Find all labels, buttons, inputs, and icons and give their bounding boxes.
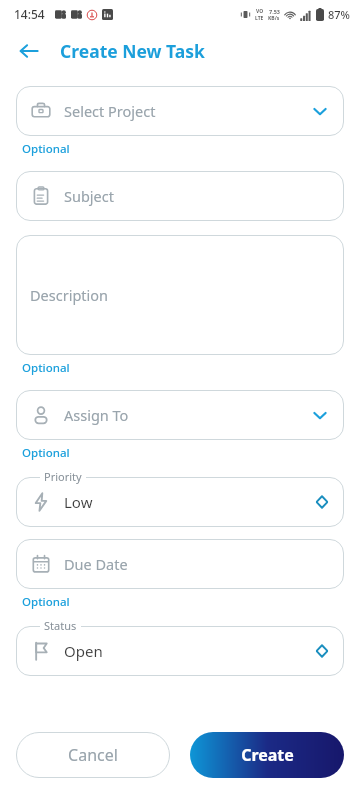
staticText: LTE <box>255 15 264 22</box>
staticText: Optional <box>22 360 70 376</box>
button[interactable]: Due Date <box>16 539 344 589</box>
staticText: Due Date <box>64 554 330 574</box>
staticText: Select Project <box>64 101 310 121</box>
staticText: Status <box>44 618 77 633</box>
staticText: Create New Task <box>60 39 205 63</box>
button[interactable]: Back <box>12 34 46 68</box>
staticText: Description <box>30 285 109 305</box>
button[interactable]: Low <box>16 477 344 527</box>
button[interactable]: Assign To <box>16 390 344 440</box>
staticText: Optional <box>22 141 70 157</box>
staticText: VO <box>256 8 264 15</box>
button[interactable]: Description <box>16 235 344 355</box>
staticText: Low <box>64 492 314 512</box>
staticText: 14:54 <box>14 6 45 22</box>
button[interactable]: Cancel <box>16 732 170 778</box>
staticText: Assign To <box>64 405 310 425</box>
staticText: KB/s <box>268 15 280 22</box>
staticText: Cancel <box>68 744 118 766</box>
button[interactable]: Select Project <box>16 86 344 136</box>
button[interactable]: Create <box>190 732 344 778</box>
staticText: Optional <box>22 594 70 610</box>
staticText: Optional <box>22 445 70 461</box>
button[interactable]: Open <box>16 626 344 676</box>
button[interactable]: Subject <box>16 171 344 221</box>
staticText: Subject <box>64 186 330 206</box>
staticText: Open <box>64 641 314 661</box>
staticText: Priority <box>44 469 82 484</box>
staticText: 7.53 <box>269 8 280 15</box>
staticText: 87% <box>328 7 350 22</box>
staticText: Create <box>241 744 294 766</box>
